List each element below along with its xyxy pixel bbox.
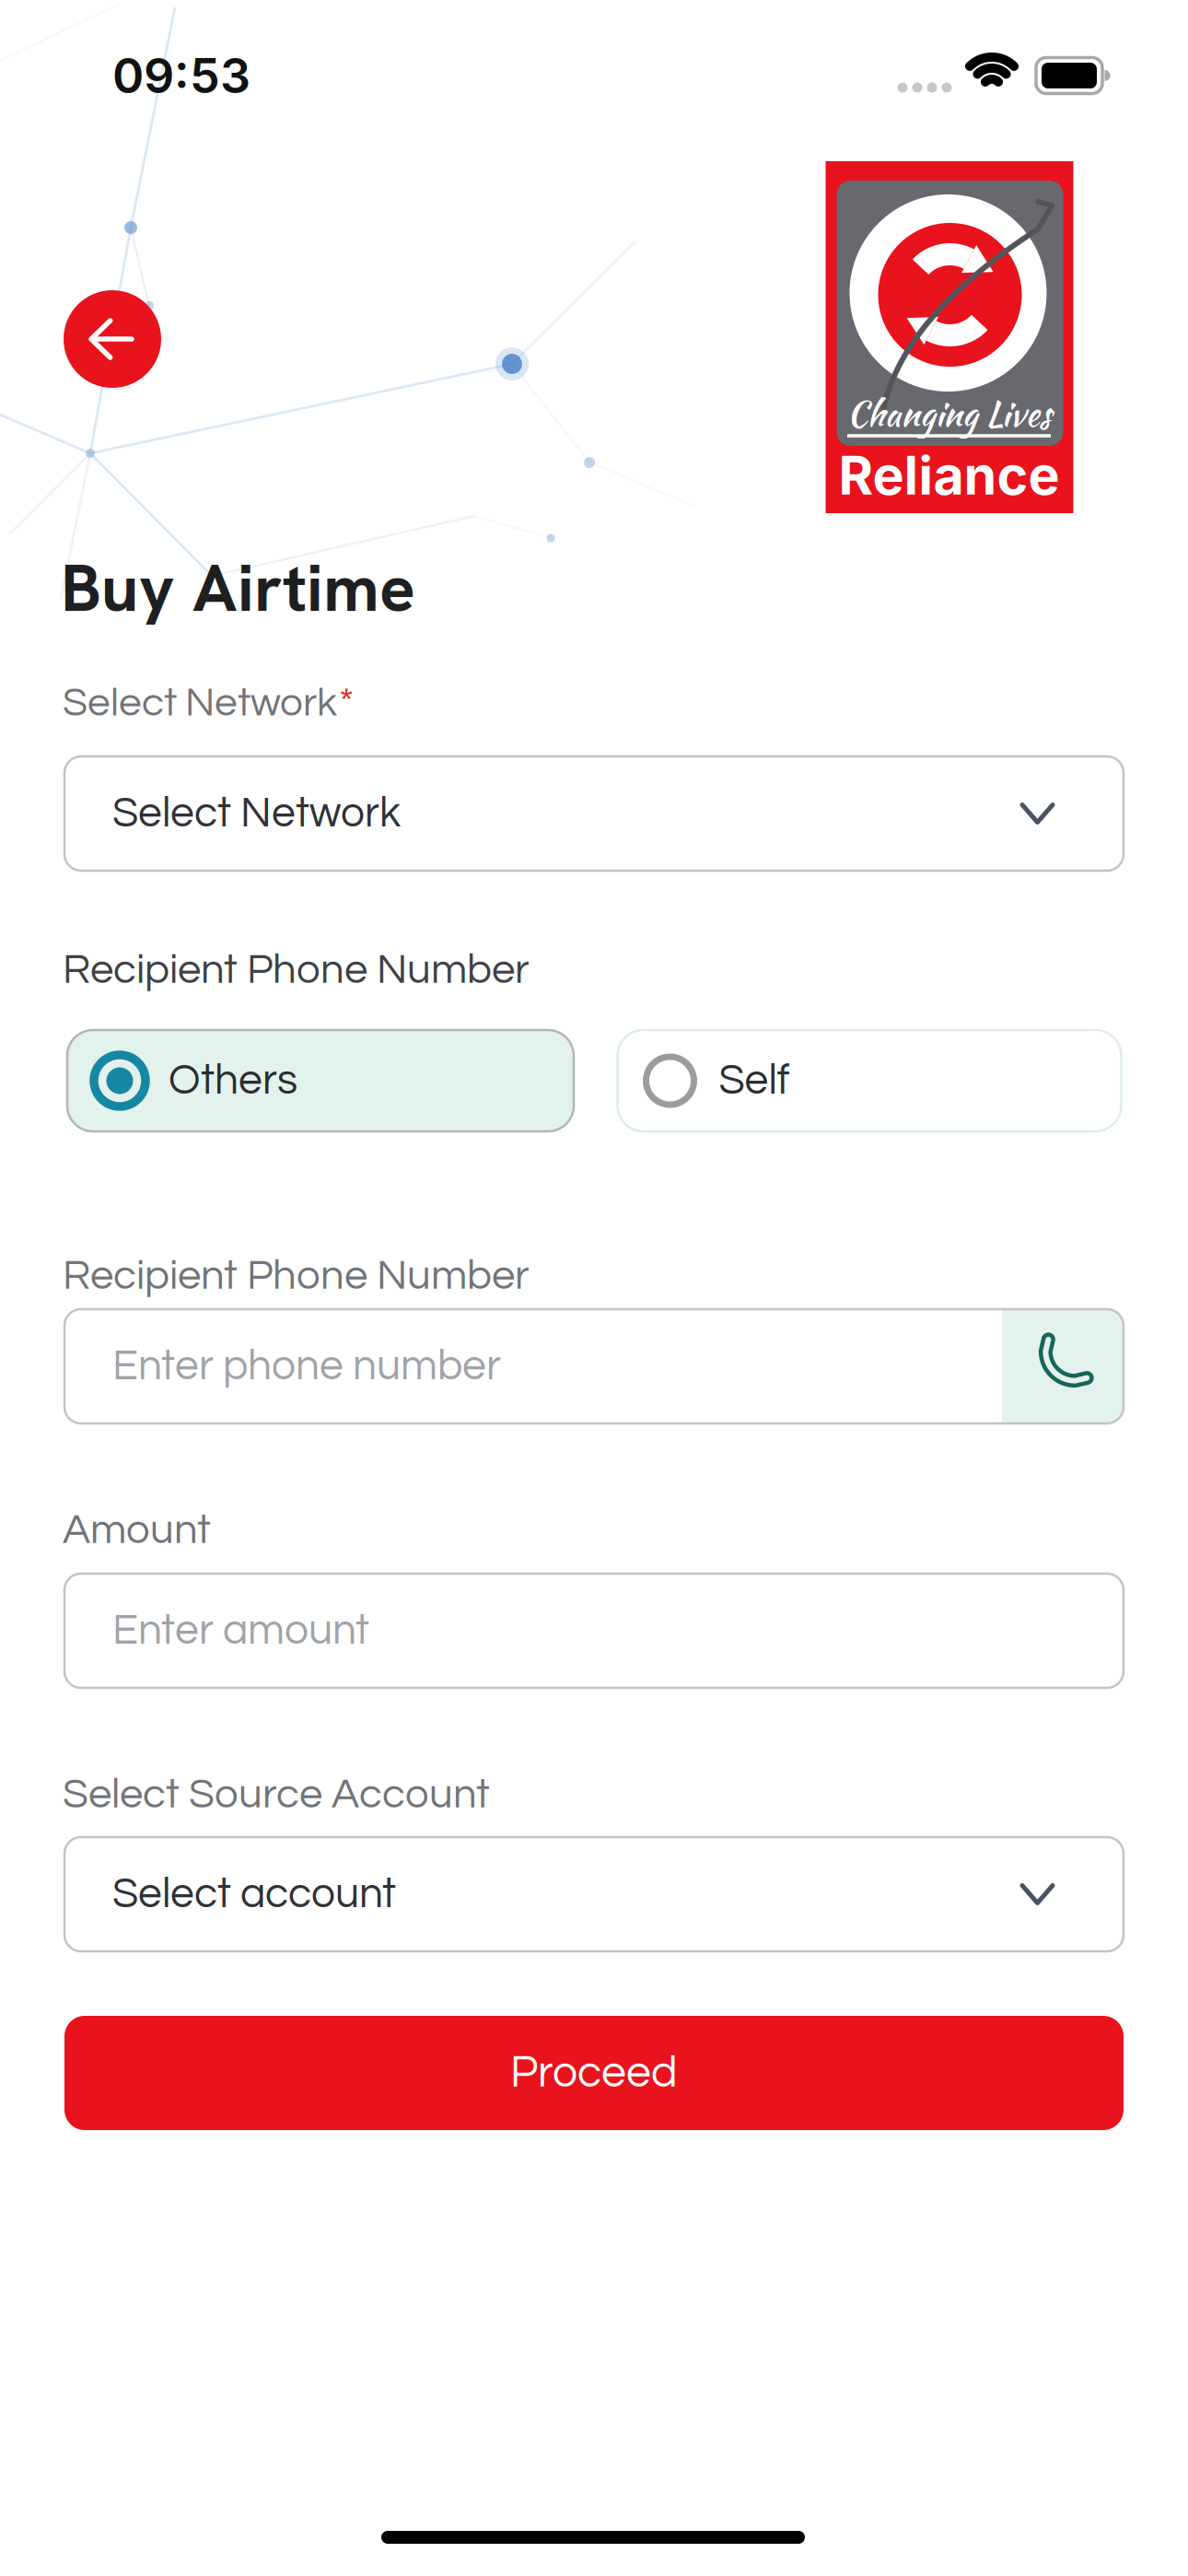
- staticText: Recipient Phone Number: [63, 949, 530, 992]
- staticText: Select account: [112, 1872, 396, 1916]
- staticText: Enter phone number: [112, 1344, 501, 1388]
- staticText: Reliance: [839, 443, 1060, 507]
- staticText: Enter amount: [112, 1609, 369, 1653]
- staticText: Select Network: [63, 682, 337, 724]
- staticText: Proceed: [510, 2050, 678, 2096]
- staticText: Amount: [63, 1509, 211, 1552]
- staticText: 09:53: [112, 47, 250, 104]
- staticText: Buy Airtime: [61, 545, 415, 631]
- staticText: Others: [169, 1059, 297, 1103]
- staticText: *: [339, 682, 354, 724]
- staticText: Select Network: [112, 792, 401, 835]
- staticText: Changing Lives: [847, 389, 1051, 439]
- staticText: Select Source Account: [63, 1773, 490, 1816]
- staticText: Self: [719, 1059, 790, 1103]
- staticText: Recipient Phone Number: [63, 1255, 530, 1298]
